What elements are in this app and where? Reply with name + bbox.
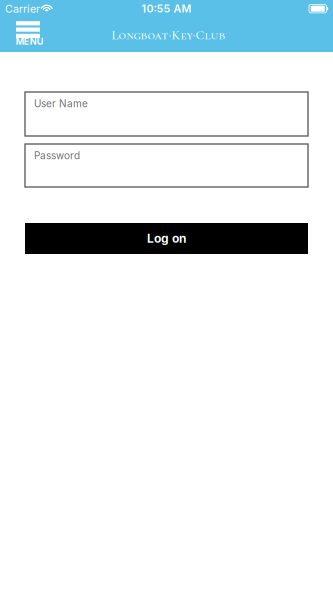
button[interactable]: User Name	[25, 92, 308, 136]
staticText: Log on	[147, 231, 186, 246]
button[interactable]: Password	[25, 144, 308, 187]
staticText: MENU	[16, 36, 44, 47]
staticText: User Name	[34, 97, 88, 110]
button[interactable]: Log on	[25, 223, 308, 254]
staticText: 10:55 AM	[141, 2, 191, 15]
staticText: Password	[34, 149, 80, 162]
button[interactable]: Menu	[16, 21, 42, 47]
staticText: Carrier	[5, 2, 40, 15]
staticText: Longboat·Key·Club	[111, 27, 225, 43]
